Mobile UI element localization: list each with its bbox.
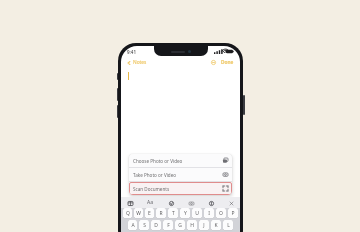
staticText: P: [231, 210, 235, 217]
button[interactable]: Checklist: [167, 199, 175, 207]
staticText: T: [172, 210, 175, 217]
button[interactable]: Table: [126, 199, 134, 207]
button[interactable]: Done: [220, 58, 235, 67]
staticText: R: [159, 210, 163, 217]
button[interactable]: W: [134, 208, 143, 218]
staticText: A: [131, 222, 135, 229]
button[interactable]: Take Photo or Video: [129, 168, 232, 181]
button[interactable]: Choose Photo or Video: [129, 154, 232, 167]
button[interactable]: Markup: [207, 199, 215, 207]
button[interactable]: Notes: [126, 58, 148, 67]
button[interactable]: Scan Documents: [129, 182, 232, 195]
button[interactable]: K: [211, 220, 221, 230]
button[interactable]: L: [223, 220, 233, 230]
staticText: W: [136, 210, 141, 217]
button[interactable]: O: [216, 208, 226, 218]
button[interactable]: I: [204, 208, 214, 218]
staticText: Scan Documents: [133, 186, 223, 192]
staticText: O: [219, 210, 223, 217]
staticText: Notes: [133, 59, 147, 66]
button[interactable]: P: [228, 208, 238, 218]
staticText: Y: [184, 210, 187, 217]
staticText: 9:41: [127, 49, 136, 55]
staticText: Choose Photo or Video: [133, 158, 223, 164]
staticText: H: [190, 222, 194, 229]
button[interactable]: S: [139, 220, 149, 230]
staticText: E: [148, 210, 151, 217]
button[interactable]: Camera: [187, 199, 195, 207]
button[interactable]: More: [210, 59, 217, 66]
staticText: Take Photo or Video: [133, 172, 223, 178]
button[interactable]: J: [199, 220, 209, 230]
button[interactable]: G: [175, 220, 185, 230]
staticText: J: [203, 222, 205, 229]
staticText: K: [214, 222, 218, 229]
button[interactable]: T: [168, 208, 178, 218]
button[interactable]: R: [156, 208, 166, 218]
staticText: D: [154, 222, 158, 229]
staticText: U: [195, 210, 199, 217]
button[interactable]: F: [163, 220, 173, 230]
staticText: S: [143, 222, 146, 229]
staticText: F: [167, 222, 170, 229]
staticText: Done: [221, 59, 234, 66]
button[interactable]: D: [151, 220, 161, 230]
button[interactable]: U: [192, 208, 202, 218]
button[interactable]: A: [128, 220, 137, 230]
button[interactable]: E: [145, 208, 154, 218]
staticText: G: [178, 222, 182, 229]
staticText: Aa: [147, 199, 154, 206]
staticText: L: [227, 222, 230, 229]
button[interactable]: Close: [227, 199, 235, 207]
button[interactable]: H: [187, 220, 197, 230]
button[interactable]: Q: [123, 208, 132, 218]
button[interactable]: Y: [180, 208, 190, 218]
button[interactable]: Aa: [146, 198, 155, 207]
staticText: Q: [126, 210, 130, 217]
staticText: I: [208, 210, 210, 217]
